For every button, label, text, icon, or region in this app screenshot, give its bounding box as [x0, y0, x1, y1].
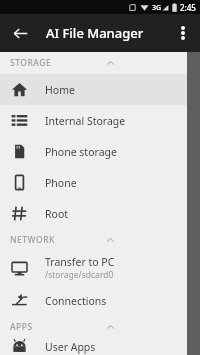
- staticText: Connections: [45, 294, 107, 308]
- button[interactable]: Connections: [0, 285, 187, 316]
- staticText: AI File Manager: [46, 24, 144, 42]
- button[interactable]: Back: [6, 19, 34, 47]
- button[interactable]: Internal Storage: [0, 105, 187, 136]
- button[interactable]: Phone storage: [0, 136, 187, 167]
- button[interactable]: Root: [0, 198, 187, 229]
- staticText: Transfer to PC: [45, 255, 115, 269]
- staticText: Root: [45, 207, 69, 221]
- button[interactable]: APPS: [0, 316, 187, 338]
- staticText: Home: [45, 83, 75, 97]
- staticText: 2:45: [180, 2, 196, 13]
- button[interactable]: User Apps: [0, 338, 187, 355]
- staticText: APPS: [10, 321, 33, 333]
- button[interactable]: Transfer to PC: [0, 251, 187, 285]
- button[interactable]: STORAGE: [0, 52, 187, 74]
- staticText: STORAGE: [10, 57, 52, 69]
- staticText: NETWORK: [10, 234, 55, 246]
- staticText: User Apps: [45, 340, 96, 354]
- button[interactable]: More options: [170, 20, 196, 46]
- button[interactable]: Phone: [0, 167, 187, 198]
- staticText: Internal Storage: [45, 114, 126, 128]
- staticText: Phone storage: [45, 145, 117, 159]
- staticText: Phone: [45, 176, 77, 190]
- staticText: 3G: [152, 3, 162, 13]
- staticText: /storage/sdcard0: [45, 269, 114, 281]
- button[interactable]: NETWORK: [0, 229, 187, 251]
- button[interactable]: Home: [0, 74, 187, 105]
